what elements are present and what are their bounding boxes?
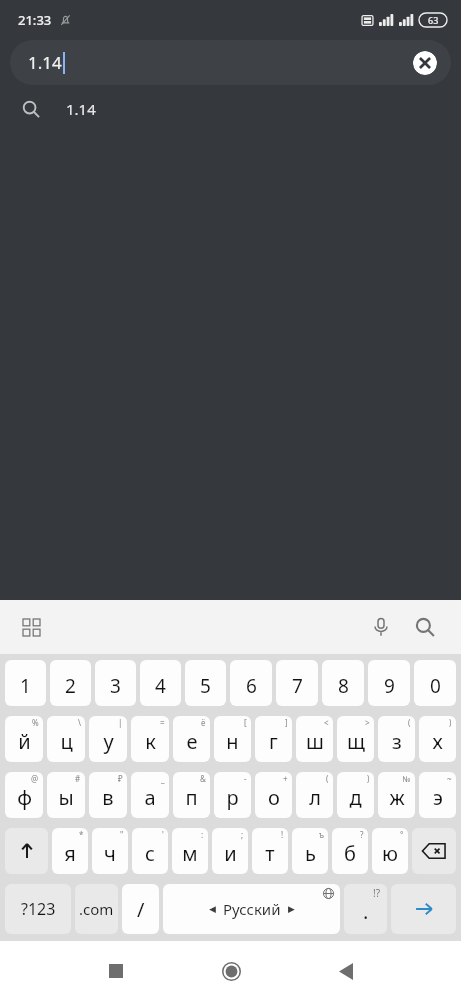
- staticText: \: [78, 717, 81, 728]
- button[interactable]: \: [47, 716, 85, 762]
- staticText: ?: [360, 829, 364, 840]
- button[interactable]: 1: [5, 660, 46, 706]
- button[interactable]: @: [5, 772, 43, 818]
- button[interactable]: №: [378, 772, 415, 818]
- staticText: ц: [60, 728, 73, 755]
- button[interactable]: (: [296, 772, 333, 818]
- staticText: ф: [17, 784, 32, 811]
- button[interactable]: %: [5, 716, 43, 762]
- button[interactable]: Home: [207, 947, 255, 995]
- staticText: ч: [104, 840, 116, 867]
- button[interactable]: 7: [276, 660, 318, 706]
- button[interactable]: 1.14: [0, 85, 461, 133]
- staticText: я: [64, 840, 76, 867]
- button[interactable]: :: [172, 828, 208, 874]
- button[interactable]: ": [92, 828, 128, 874]
- staticText: Русский: [223, 899, 281, 919]
- staticText: д: [349, 784, 362, 811]
- button[interactable]: ': [132, 828, 168, 874]
- staticText: ш: [306, 728, 324, 755]
- button[interactable]: ]: [255, 716, 292, 762]
- button[interactable]: (: [378, 716, 415, 762]
- button[interactable]: 0: [414, 660, 456, 706]
- button[interactable]: Space, Русский: [163, 884, 340, 934]
- staticText: |: [118, 717, 123, 728]
- staticText: э: [433, 784, 443, 811]
- button[interactable]: ?123: [5, 884, 71, 934]
- button[interactable]: *: [52, 828, 88, 874]
- staticText: (: [326, 773, 329, 784]
- staticText: &: [200, 773, 206, 784]
- button[interactable]: 9: [368, 660, 410, 706]
- staticText: 1.14: [28, 51, 62, 74]
- staticText: 1.14: [66, 99, 96, 119]
- button[interactable]: Back: [322, 947, 370, 995]
- button[interactable]: =: [131, 716, 169, 762]
- staticText: >: [365, 717, 370, 728]
- staticText: ~: [447, 773, 452, 784]
- staticText: ): [449, 717, 452, 728]
- button[interactable]: _: [131, 772, 169, 818]
- button[interactable]: [: [214, 716, 251, 762]
- button[interactable]: Enter: [391, 884, 456, 934]
- button[interactable]: ₽: [89, 772, 127, 818]
- button[interactable]: &: [173, 772, 210, 818]
- staticText: -: [244, 773, 247, 784]
- staticText: 3: [110, 673, 121, 699]
- button[interactable]: >: [337, 716, 374, 762]
- button[interactable]: ~: [419, 772, 456, 818]
- button[interactable]: 1.14: [10, 40, 451, 85]
- staticText: !?: [373, 886, 381, 900]
- staticText: щ: [347, 728, 365, 755]
- staticText: %: [32, 717, 39, 728]
- staticText: [: [244, 717, 247, 728]
- button[interactable]: !: [252, 828, 288, 874]
- button[interactable]: ): [337, 772, 374, 818]
- staticText: ?123: [21, 898, 56, 920]
- button[interactable]: Clear: [413, 51, 437, 75]
- button[interactable]: -: [214, 772, 251, 818]
- button[interactable]: ъ: [292, 828, 328, 874]
- button[interactable]: 2: [50, 660, 91, 706]
- button[interactable]: #: [47, 772, 85, 818]
- button[interactable]: ;: [212, 828, 248, 874]
- staticText: ъ: [319, 829, 324, 840]
- staticText: 4: [155, 673, 166, 699]
- button[interactable]: ?: [332, 828, 368, 874]
- button[interactable]: 3: [95, 660, 136, 706]
- button[interactable]: /: [122, 884, 159, 934]
- button[interactable]: Recent apps: [92, 947, 140, 995]
- button[interactable]: 4: [140, 660, 181, 706]
- staticText: .com: [79, 899, 114, 919]
- button[interactable]: °: [372, 828, 408, 874]
- staticText: .: [363, 898, 369, 925]
- button[interactable]: ): [419, 716, 456, 762]
- staticText: ]: [285, 717, 288, 728]
- staticText: у: [103, 728, 114, 755]
- button[interactable]: Shift: [5, 828, 48, 874]
- button[interactable]: .com: [75, 884, 118, 934]
- staticText: 0: [430, 673, 441, 699]
- button[interactable]: Search: [403, 605, 447, 649]
- button[interactable]: !?: [344, 884, 387, 934]
- staticText: ◀: [209, 904, 216, 914]
- button[interactable]: |: [89, 716, 127, 762]
- staticText: 1: [20, 673, 31, 699]
- staticText: ▶: [288, 904, 295, 914]
- button[interactable]: +: [255, 772, 292, 818]
- staticText: 9: [384, 673, 395, 699]
- button[interactable]: Backspace: [412, 828, 456, 874]
- staticText: 6: [246, 673, 257, 699]
- button[interactable]: 6: [230, 660, 272, 706]
- button[interactable]: 5: [185, 660, 226, 706]
- staticText: а: [144, 784, 156, 811]
- button[interactable]: ё: [173, 716, 210, 762]
- staticText: ж: [389, 784, 405, 811]
- button[interactable]: Keyboard layouts: [14, 610, 48, 644]
- staticText: й: [18, 728, 31, 755]
- button[interactable]: Voice input: [359, 605, 403, 649]
- button[interactable]: 8: [322, 660, 364, 706]
- button[interactable]: <: [296, 716, 333, 762]
- staticText: б: [344, 840, 356, 867]
- staticText: ь: [305, 840, 316, 867]
